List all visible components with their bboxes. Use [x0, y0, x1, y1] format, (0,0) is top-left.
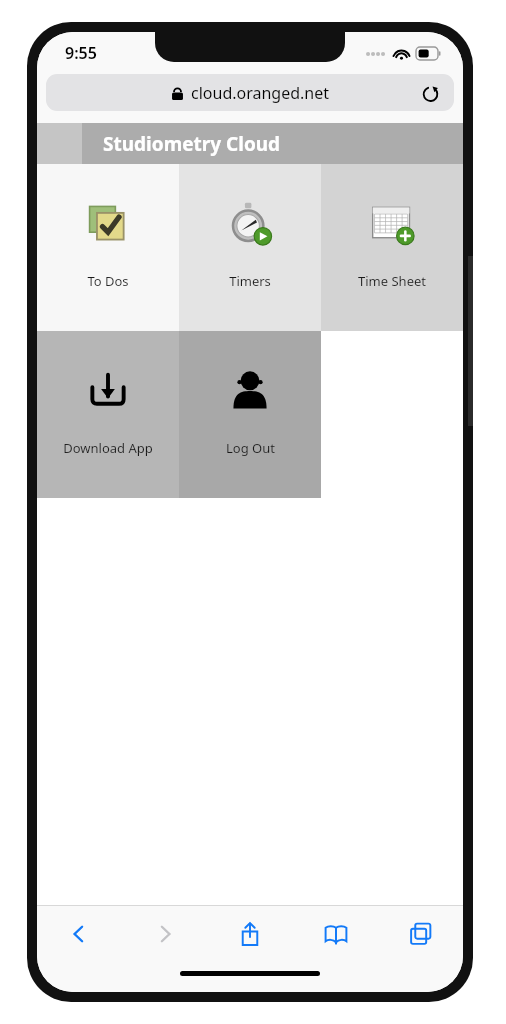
button[interactable]: Time Sheet: [321, 164, 463, 331]
button[interactable]: Reload: [416, 79, 444, 107]
staticText: Log Out: [226, 439, 275, 457]
staticText: 9:55: [65, 42, 97, 64]
button[interactable]: Timers: [179, 164, 321, 331]
button[interactable]: Download App: [37, 331, 179, 498]
button[interactable]: Log Out: [179, 331, 321, 498]
staticText: Download App: [63, 439, 153, 457]
button[interactable]: Forward: [141, 910, 189, 958]
button[interactable]: cloud.oranged.net: [46, 74, 454, 111]
button[interactable]: Back: [55, 910, 103, 958]
button[interactable]: To Dos: [37, 164, 179, 331]
button[interactable]: Tabs: [397, 910, 445, 958]
staticText: Timers: [229, 272, 271, 290]
button[interactable]: Share: [226, 910, 274, 958]
button[interactable]: Bookmarks: [312, 910, 360, 958]
staticText: To Dos: [87, 272, 129, 290]
staticText: cloud.oranged.net: [191, 82, 330, 104]
staticText: Time Sheet: [358, 272, 426, 290]
staticText: Studiometry Cloud: [103, 131, 281, 157]
